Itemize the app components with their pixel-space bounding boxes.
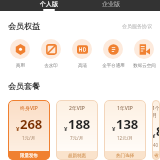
staticText: 1个月 xyxy=(152,105,160,119)
button[interactable]: 1个月 xyxy=(152,100,160,160)
staticText: 热门选择 xyxy=(116,153,134,159)
staticText: 138 xyxy=(116,115,139,133)
staticText: 会员权益 xyxy=(8,21,40,31)
button[interactable]: 去水印 xyxy=(37,39,65,69)
staticText: 40 xyxy=(153,142,159,148)
button[interactable]: 终身VIP xyxy=(8,100,50,160)
staticText: 高清 xyxy=(78,63,87,69)
staticText: 188 xyxy=(68,115,91,133)
button[interactable]: 企业版 xyxy=(102,0,120,11)
button[interactable]: 2年VIP xyxy=(56,100,98,160)
staticText: 个人版 xyxy=(40,0,58,8)
staticText: 超新特惠 xyxy=(68,153,86,159)
button[interactable]: 全平台通用 xyxy=(99,39,127,69)
staticText: 企业版 xyxy=(102,0,120,8)
button[interactable]: 高清 xyxy=(68,39,96,69)
staticText: 12元/月 xyxy=(117,135,133,141)
staticText: 会员服务协议 xyxy=(122,23,152,29)
button[interactable]: 1年VIP xyxy=(104,100,146,160)
staticText: 2年VIP xyxy=(69,105,85,112)
button[interactable]: 数据云空间 xyxy=(130,39,158,69)
staticText: ¥ xyxy=(112,125,116,133)
button[interactable]: 商用 xyxy=(6,39,34,69)
staticText: 会员套餐 xyxy=(8,81,40,91)
staticText: 全平台通用 xyxy=(102,63,125,69)
staticText: 268 xyxy=(20,115,43,133)
staticText: 去水印 xyxy=(44,63,58,69)
staticText: 省 xyxy=(154,153,159,159)
staticText: 商用 xyxy=(16,63,25,69)
staticText: 8 xyxy=(156,122,160,140)
button[interactable]: 个人版 xyxy=(40,0,58,11)
staticText: 7元/月 xyxy=(70,135,84,141)
staticText: 数据云空间 xyxy=(133,63,156,69)
staticText: 1元/月 xyxy=(22,135,36,141)
staticText: 终身VIP xyxy=(20,105,38,112)
staticText: ¥ xyxy=(152,132,156,140)
staticText: 1年VIP xyxy=(117,105,133,112)
staticText: ¥ xyxy=(64,125,68,133)
staticText: 限量发售 xyxy=(20,153,38,159)
button[interactable]: 会员服务协议 xyxy=(122,23,152,29)
staticText: ¥ xyxy=(16,125,20,133)
